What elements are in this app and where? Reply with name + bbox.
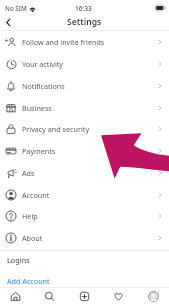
button[interactable]: Payments xyxy=(0,140,169,162)
staticText: Payments xyxy=(22,146,56,156)
button[interactable]: Notifications xyxy=(0,75,169,97)
button[interactable]: Your activity xyxy=(0,53,169,75)
staticText: Your activity xyxy=(22,59,64,69)
staticText: Logins xyxy=(7,255,30,265)
button[interactable]: About xyxy=(0,227,169,249)
staticText: Follow and invite friends xyxy=(22,37,105,47)
staticText: Privacy and security xyxy=(22,124,90,134)
staticText: Account xyxy=(22,190,50,200)
button[interactable]: Profile xyxy=(139,286,167,306)
staticText: Business xyxy=(22,103,52,113)
button[interactable]: Back xyxy=(0,14,17,30)
staticText: Settings xyxy=(67,16,102,28)
button[interactable]: Ads xyxy=(0,162,169,184)
button[interactable]: Add post xyxy=(70,286,98,306)
staticText: Ads xyxy=(22,168,35,178)
staticText: Notifications xyxy=(22,81,65,91)
staticText: Add Account xyxy=(7,276,50,286)
button[interactable]: Business xyxy=(0,97,169,119)
button[interactable]: Help xyxy=(0,205,169,227)
button[interactable]: Account xyxy=(0,184,169,206)
staticText: Help xyxy=(22,211,38,221)
button[interactable]: Follow and invite friends xyxy=(0,31,169,53)
staticText: No SIM xyxy=(5,4,27,13)
button[interactable]: Home xyxy=(1,286,29,306)
button[interactable]: Privacy and security xyxy=(0,118,169,140)
staticText: About xyxy=(22,233,43,243)
button[interactable]: Activity xyxy=(104,286,132,306)
button[interactable]: Add Account xyxy=(0,273,169,289)
button[interactable]: Search xyxy=(35,286,63,306)
staticText: 16:33 xyxy=(75,4,92,13)
